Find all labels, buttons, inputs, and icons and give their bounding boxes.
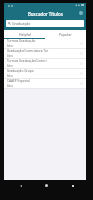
staticText: Graduação Grupo bbox=[7, 69, 34, 73]
button[interactable]: Graduação/Licenciatura Tur bbox=[4, 49, 86, 58]
button[interactable]: Graduação bbox=[6, 20, 84, 27]
button[interactable]: Popular bbox=[45, 30, 86, 39]
button[interactable]: Helpful bbox=[4, 30, 45, 39]
staticText: Turmas Graduação/Licenci bbox=[7, 59, 47, 63]
button[interactable]: Profile bbox=[79, 11, 83, 15]
button[interactable]: Back bbox=[18, 183, 23, 188]
staticText: Helpful bbox=[19, 32, 31, 37]
staticText: Turmas Graduação bbox=[7, 39, 36, 43]
staticText: Graduação/Licenciatura Tur bbox=[7, 49, 49, 53]
staticText: Graduação bbox=[12, 21, 31, 26]
button[interactable]: Recent apps bbox=[70, 183, 75, 188]
staticText: Buscador Títulos bbox=[28, 11, 63, 17]
button[interactable]: Home bbox=[44, 183, 49, 188]
staticText: Popular bbox=[59, 32, 72, 37]
button[interactable]: CAAEP Especial bbox=[4, 79, 86, 88]
staticText: Ativo bbox=[7, 54, 14, 58]
staticText: Ativo bbox=[7, 84, 14, 88]
staticText: CAAEP Especial bbox=[7, 79, 30, 83]
staticText: Ativo bbox=[7, 64, 14, 68]
staticText: Ativo bbox=[7, 44, 14, 48]
button[interactable]: Turmas Graduação bbox=[4, 39, 86, 48]
staticText: Ativo bbox=[7, 74, 14, 78]
button[interactable]: Graduação Grupo bbox=[4, 69, 86, 78]
button[interactable]: Turmas Graduação/Licenci bbox=[4, 59, 86, 68]
